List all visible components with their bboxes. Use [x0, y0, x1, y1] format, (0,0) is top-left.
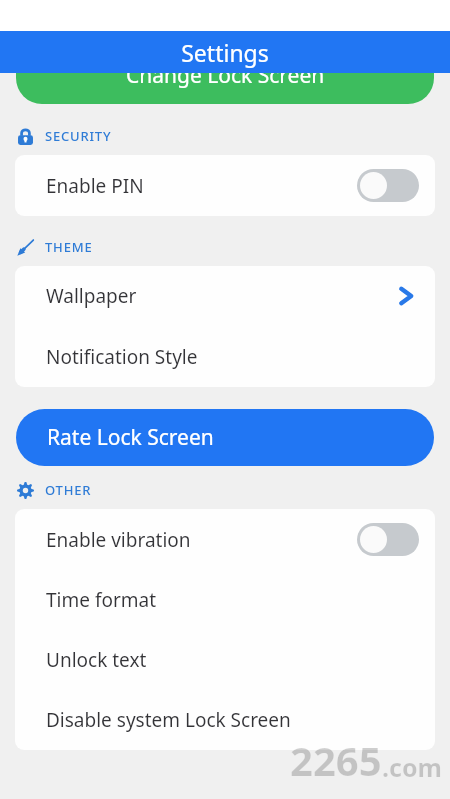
staticText: Settings	[181, 37, 269, 68]
button[interactable]: Enable PIN	[15, 155, 435, 216]
button[interactable]: Enable PIN	[357, 169, 419, 202]
staticText: OTHER	[45, 481, 92, 499]
staticText: Enable vibration	[46, 527, 191, 553]
staticText: Rate Lock Screen	[47, 423, 214, 452]
staticText: THEME	[45, 238, 93, 256]
staticText: SECURITY	[45, 127, 112, 145]
staticText: Notification Style	[46, 344, 198, 370]
other: Open wallpaper	[393, 283, 419, 309]
button[interactable]: Rate Lock Screen	[16, 409, 434, 466]
staticText: 2265	[290, 733, 382, 787]
button[interactable]: Change Lock Screen	[16, 73, 434, 104]
staticText: .com	[382, 750, 442, 784]
button[interactable]: Notification Style	[15, 326, 435, 387]
button[interactable]: Enable vibration	[357, 523, 419, 556]
button[interactable]: Disable system Lock Screen	[15, 690, 435, 750]
button[interactable]: Unlock text	[15, 630, 435, 690]
staticText: Disable system Lock Screen	[46, 707, 291, 733]
button[interactable]: Wallpaper	[15, 266, 435, 326]
staticText: Unlock text	[46, 647, 147, 673]
button[interactable]: Enable vibration	[15, 509, 435, 570]
staticText: Change Lock Screen	[126, 73, 325, 90]
staticText: Enable PIN	[46, 173, 144, 199]
staticText: Time format	[46, 587, 157, 613]
staticText: Wallpaper	[46, 283, 137, 309]
button[interactable]: Time format	[15, 570, 435, 630]
